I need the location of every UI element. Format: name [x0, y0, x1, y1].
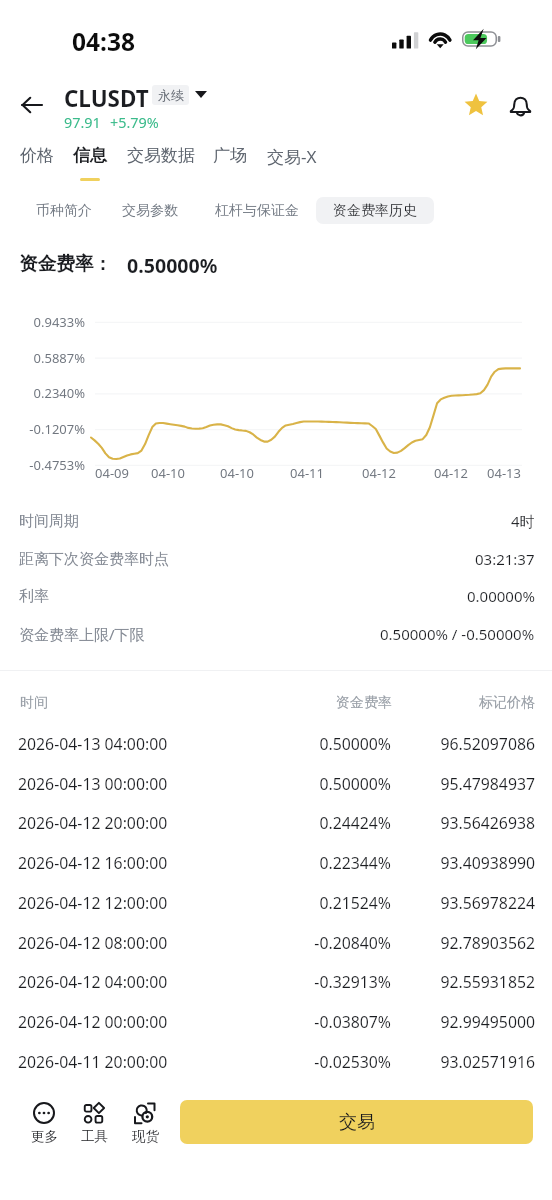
- staticText: 0.24424%: [271, 812, 391, 834]
- button[interactable]: Back: [9, 83, 53, 127]
- staticText: 2026-04-12 08:00:00: [18, 932, 271, 954]
- staticText: 0.9433%: [0, 313, 85, 331]
- staticText: 信息: [73, 145, 107, 166]
- staticText: 0.50000%: [271, 733, 391, 755]
- button[interactable]: 资金费率历史: [316, 197, 434, 224]
- button[interactable]: 更多: [22, 1102, 66, 1145]
- button[interactable]: 现货: [123, 1102, 167, 1145]
- staticText: 标记价格: [392, 694, 535, 712]
- staticText: 04-12: [349, 464, 409, 482]
- staticText: 交易-X: [267, 145, 317, 168]
- staticText: 93.40938990: [391, 852, 535, 874]
- staticText: 2026-04-12 04:00:00: [18, 971, 271, 993]
- staticText: 2026-04-13 00:00:00: [18, 773, 271, 795]
- button[interactable]: 广场: [185, 141, 275, 181]
- button[interactable]: 币种简介: [22, 197, 105, 224]
- button[interactable]: CLUSDT: [60, 80, 210, 130]
- button[interactable]: 杠杆与保证金: [199, 197, 315, 224]
- staticText: -0.32913%: [271, 971, 391, 993]
- staticText: 0.2340%: [0, 384, 85, 402]
- staticText: 0.22344%: [271, 852, 391, 874]
- staticText: 03:21:37: [475, 549, 535, 569]
- staticText: 96.52097086: [391, 733, 535, 755]
- staticText: 95.47984937: [391, 773, 535, 795]
- staticText: 2026-04-13 04:00:00: [18, 733, 271, 755]
- staticText: 资金费率：: [19, 252, 112, 275]
- staticText: 资金费率上限/下限: [19, 624, 145, 644]
- button[interactable]: 工具: [72, 1102, 116, 1145]
- staticText: 交易数据: [127, 145, 195, 166]
- staticText: 92.99495000: [391, 1011, 535, 1033]
- staticText: 币种简介: [36, 202, 92, 220]
- staticText: 现货: [132, 1128, 159, 1145]
- staticText: 更多: [31, 1128, 58, 1145]
- staticText: 04:38: [72, 25, 135, 58]
- staticText: 时间: [20, 694, 272, 712]
- staticText: 距离下次资金费率时点: [19, 550, 169, 569]
- staticText: 时间周期: [19, 512, 79, 531]
- staticText: 交易: [339, 1111, 375, 1134]
- button[interactable]: 信息: [45, 141, 135, 181]
- staticText: 杠杆与保证金: [215, 202, 299, 220]
- button[interactable]: Notifications: [500, 85, 541, 126]
- staticText: 2026-04-12 16:00:00: [18, 852, 271, 874]
- staticText: 2026-04-12 20:00:00: [18, 812, 271, 834]
- button[interactable]: 交易参数: [109, 197, 190, 224]
- button[interactable]: 价格: [0, 141, 82, 181]
- staticText: 04-13: [474, 464, 534, 482]
- staticText: 资金费率: [272, 694, 392, 712]
- staticText: 0.00000%: [467, 586, 535, 606]
- staticText: 04-10: [207, 464, 267, 482]
- staticText: 2026-04-12 12:00:00: [18, 892, 271, 914]
- staticText: 4时: [511, 511, 535, 531]
- staticText: 92.78903562: [391, 932, 535, 954]
- staticText: 广场: [213, 145, 247, 166]
- staticText: 0.50000%: [271, 773, 391, 795]
- staticText: 价格: [20, 145, 54, 166]
- button[interactable]: 交易: [180, 1100, 533, 1144]
- staticText: 0.5887%: [0, 349, 85, 367]
- staticText: 92.55931852: [391, 971, 535, 993]
- staticText: 永续: [158, 87, 184, 103]
- staticText: 93.02571916: [391, 1051, 535, 1073]
- staticText: 04-09: [82, 464, 142, 482]
- staticText: -0.1207%: [0, 420, 85, 438]
- staticText: 利率: [19, 587, 49, 606]
- staticText: CLUSDT: [64, 83, 149, 114]
- staticText: -0.02530%: [271, 1051, 391, 1073]
- staticText: 93.56978224: [391, 892, 535, 914]
- staticText: -0.03807%: [271, 1011, 391, 1033]
- staticText: 04-10: [138, 464, 198, 482]
- button[interactable]: 交易-X: [247, 141, 337, 181]
- staticText: 0.21524%: [271, 892, 391, 914]
- staticText: 2026-04-11 20:00:00: [18, 1051, 271, 1073]
- staticText: 交易参数: [122, 202, 178, 220]
- button[interactable]: 交易数据: [116, 141, 206, 181]
- staticText: -0.20840%: [271, 932, 391, 954]
- staticText: +5.79%: [110, 113, 159, 133]
- staticText: -0.4753%: [0, 456, 85, 474]
- staticText: 工具: [81, 1128, 108, 1145]
- staticText: 资金费率历史: [333, 202, 417, 220]
- staticText: 0.50000% / -0.50000%: [380, 624, 535, 644]
- staticText: 2026-04-12 00:00:00: [18, 1011, 271, 1033]
- staticText: 04-11: [277, 464, 337, 482]
- staticText: 04-12: [421, 464, 481, 482]
- staticText: 93.56426938: [391, 812, 535, 834]
- button[interactable]: Favorite: [456, 85, 496, 125]
- staticText: 97.91: [64, 113, 101, 133]
- staticText: 0.50000%: [127, 252, 218, 279]
